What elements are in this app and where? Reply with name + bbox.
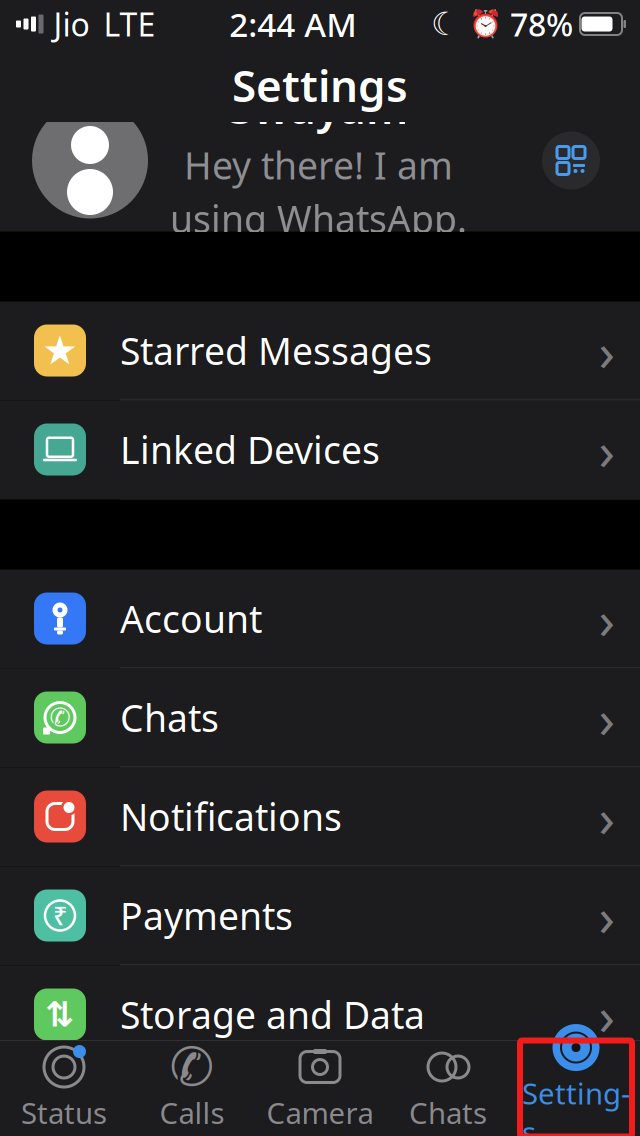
staticText: Chats xyxy=(120,693,219,742)
button[interactable]: Chats xyxy=(392,1040,504,1136)
button[interactable]: Settings xyxy=(520,1040,632,1136)
staticText: 78% xyxy=(510,3,573,45)
staticText: Status xyxy=(21,1093,107,1132)
staticText: ⏰ xyxy=(469,9,502,39)
staticText: Calls xyxy=(159,1093,224,1132)
staticText: Notifications xyxy=(120,792,342,841)
button[interactable]: Status xyxy=(8,1040,120,1136)
staticText: LTE xyxy=(103,3,155,45)
staticText: ⇅ xyxy=(45,995,74,1034)
staticText: ₹ xyxy=(53,899,67,932)
staticText: Linked Devices xyxy=(120,425,380,474)
button[interactable]: ₹ xyxy=(0,866,640,965)
staticText: › xyxy=(598,414,615,485)
staticText: Swayam xyxy=(229,78,408,136)
staticText: Hey there! I am xyxy=(184,140,453,190)
button[interactable]: ⇅ xyxy=(0,965,640,1064)
button[interactable]: Swayam xyxy=(0,76,640,244)
button[interactable]: Linked Devices xyxy=(0,400,640,499)
staticText: Settings xyxy=(522,1073,630,1136)
staticText: ✆ xyxy=(49,703,70,732)
staticText: Camera xyxy=(266,1093,373,1132)
staticText: ☾ xyxy=(431,6,460,42)
button[interactable]: ✆ xyxy=(136,1040,248,1136)
staticText: › xyxy=(598,979,615,1050)
staticText: 2:44 AM xyxy=(229,2,357,46)
staticText: › xyxy=(598,682,615,753)
staticText: Settings xyxy=(232,56,408,114)
button[interactable]: Notifications xyxy=(0,767,640,866)
staticText: using WhatsApp. xyxy=(170,194,467,243)
button[interactable]: ★ xyxy=(0,301,640,400)
staticText: Chats xyxy=(409,1093,487,1132)
button[interactable]: Account xyxy=(0,569,640,668)
staticText: Payments xyxy=(120,891,293,940)
staticText: Jio xyxy=(53,3,89,45)
button[interactable]: Camera xyxy=(264,1040,376,1136)
staticText: › xyxy=(598,781,615,852)
staticText: Account xyxy=(120,594,262,643)
staticText: › xyxy=(598,583,615,654)
staticText: Starred Messages xyxy=(120,326,432,375)
staticText: Storage and Data xyxy=(120,990,425,1039)
staticText: ★ xyxy=(42,328,78,373)
staticText: › xyxy=(598,880,615,951)
staticText: ✆ xyxy=(169,1037,214,1097)
button[interactable]: ✆ xyxy=(0,668,640,767)
staticText: › xyxy=(598,315,615,386)
